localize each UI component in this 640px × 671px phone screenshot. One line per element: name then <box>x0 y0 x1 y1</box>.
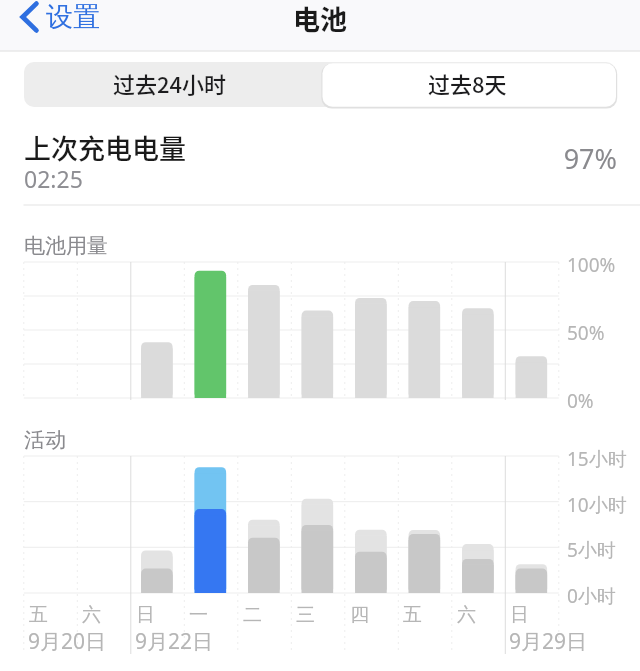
staticText: 五 <box>29 603 48 627</box>
staticText: 02:25 <box>24 163 83 194</box>
staticText: 日 <box>510 603 529 627</box>
button[interactable]: Back to 设置 <box>20 0 93 46</box>
staticText: 六 <box>457 603 476 627</box>
staticText: 活动 <box>24 427 66 453</box>
staticText: 四 <box>350 603 369 627</box>
staticText: 0小时 <box>567 583 616 609</box>
staticText: 上次充电电量 <box>24 128 186 167</box>
button[interactable]: 过去8天 <box>322 62 616 107</box>
staticText: 五 <box>403 603 422 627</box>
staticText: 9月20日 <box>28 627 107 656</box>
staticText: 电池 <box>293 0 347 38</box>
staticText: 设置 <box>46 0 100 34</box>
button[interactable] <box>0 118 640 671</box>
staticText: 50% <box>567 320 605 346</box>
staticText: 0% <box>567 388 594 414</box>
button[interactable]: 过去24小时 <box>24 62 322 107</box>
staticText: 日 <box>136 603 155 627</box>
staticText: 三 <box>296 603 315 627</box>
staticText: 100% <box>567 252 616 278</box>
staticText: 过去24小时 <box>113 67 227 99</box>
staticText: 过去8天 <box>428 67 507 99</box>
staticText: 97% <box>500 140 617 177</box>
staticText: 5小时 <box>567 537 616 563</box>
staticText: 15小时 <box>567 446 627 472</box>
staticText: 二 <box>243 603 262 627</box>
staticText: 六 <box>82 603 101 627</box>
staticText: 9月29日 <box>509 627 588 656</box>
staticText: 电池用量 <box>24 233 108 259</box>
staticText: 10小时 <box>567 492 627 518</box>
staticText: 9月22日 <box>135 627 214 656</box>
staticText: 一 <box>189 603 208 627</box>
